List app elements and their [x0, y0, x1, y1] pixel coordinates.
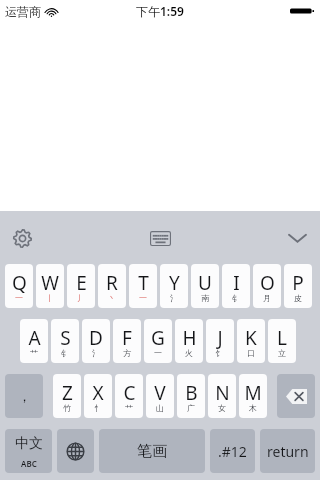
- staticText: S: [60, 325, 71, 351]
- staticText: 钅: [61, 348, 69, 358]
- staticText: 一: [154, 348, 162, 358]
- staticText: 下午1:59: [136, 3, 184, 19]
- staticText: U: [198, 270, 212, 296]
- staticText: 口: [247, 348, 255, 358]
- button[interactable]: Backspace: [277, 374, 315, 418]
- staticText: B: [185, 380, 198, 406]
- button[interactable]: G: [144, 319, 172, 363]
- staticText: F: [122, 325, 132, 351]
- staticText: R: [106, 270, 118, 296]
- staticText: M: [244, 380, 262, 406]
- staticText: 饣: [216, 348, 224, 358]
- staticText: N: [215, 380, 230, 406]
- button[interactable]: U: [191, 264, 219, 308]
- staticText: 丶: [108, 293, 116, 303]
- button[interactable]: A: [20, 319, 48, 363]
- staticText: O: [260, 270, 275, 296]
- staticText: ABC: [21, 458, 37, 469]
- staticText: Y: [169, 270, 180, 296]
- staticText: C: [123, 380, 136, 406]
- button[interactable]: M: [239, 374, 267, 418]
- button[interactable]: I: [222, 264, 250, 308]
- staticText: 艹: [125, 403, 133, 413]
- button[interactable]: W: [36, 264, 64, 308]
- button[interactable]: C: [115, 374, 143, 418]
- staticText: K: [245, 325, 257, 351]
- staticText: Q: [12, 270, 27, 296]
- staticText: L: [277, 325, 287, 351]
- staticText: A: [28, 325, 41, 351]
- staticText: G: [151, 325, 165, 351]
- staticText: Z: [62, 380, 73, 406]
- staticText: 氵: [170, 293, 178, 303]
- staticText: 一: [15, 293, 23, 303]
- button[interactable]: T: [129, 264, 157, 308]
- staticText: E: [76, 270, 87, 296]
- button[interactable]: Switch keyboard: [57, 429, 94, 473]
- button[interactable]: 笔画: [99, 429, 205, 473]
- button[interactable]: K: [237, 319, 265, 363]
- staticText: 丿: [77, 293, 85, 303]
- staticText: 艹: [30, 348, 38, 358]
- staticText: 忄: [94, 403, 102, 413]
- staticText: 皮: [294, 293, 302, 303]
- staticText: H: [182, 325, 197, 351]
- staticText: 运营商: [5, 4, 41, 19]
- staticText: 笔画: [137, 442, 167, 461]
- button[interactable]: X: [84, 374, 112, 418]
- button[interactable]: 中文: [5, 429, 52, 473]
- staticText: 一: [139, 293, 147, 303]
- staticText: 木: [249, 403, 257, 413]
- staticText: X: [92, 380, 104, 406]
- button[interactable]: Q: [5, 264, 33, 308]
- button[interactable]: ，: [5, 374, 43, 418]
- staticText: I: [233, 270, 240, 296]
- button[interactable]: B: [177, 374, 205, 418]
- staticText: 氵: [92, 348, 100, 358]
- button[interactable]: E: [67, 264, 95, 308]
- button[interactable]: V: [146, 374, 174, 418]
- staticText: 月: [263, 293, 271, 303]
- button[interactable]: D: [82, 319, 110, 363]
- staticText: ，: [18, 388, 31, 404]
- staticText: 山: [156, 403, 164, 413]
- staticText: 南: [201, 293, 209, 303]
- button[interactable]: J: [206, 319, 234, 363]
- staticText: 方: [123, 348, 131, 358]
- button[interactable]: S: [51, 319, 79, 363]
- staticText: .#12: [218, 442, 247, 461]
- staticText: W: [41, 270, 59, 296]
- button[interactable]: .#12: [210, 429, 255, 473]
- button[interactable]: R: [98, 264, 126, 308]
- button[interactable]: O: [253, 264, 281, 308]
- button[interactable]: return: [260, 429, 315, 473]
- staticText: P: [292, 270, 304, 296]
- staticText: D: [89, 325, 103, 351]
- staticText: J: [217, 325, 223, 351]
- staticText: 广: [187, 403, 195, 413]
- button[interactable]: L: [268, 319, 296, 363]
- staticText: 立: [278, 348, 286, 358]
- staticText: 竹: [63, 403, 71, 413]
- staticText: T: [138, 270, 149, 296]
- button[interactable]: Y: [160, 264, 188, 308]
- staticText: 中文: [15, 435, 43, 453]
- staticText: V: [154, 380, 166, 406]
- button[interactable]: N: [208, 374, 236, 418]
- button[interactable]: H: [175, 319, 203, 363]
- staticText: 女: [218, 403, 226, 413]
- staticText: 丨: [46, 293, 54, 303]
- button[interactable]: P: [284, 264, 312, 308]
- staticText: return: [267, 442, 309, 461]
- staticText: 钅: [232, 293, 240, 303]
- button[interactable]: Settings: [6, 222, 38, 254]
- button[interactable]: Keyboard layout: [143, 224, 177, 252]
- button[interactable]: F: [113, 319, 141, 363]
- button[interactable]: Hide keyboard: [282, 223, 312, 253]
- staticText: 火: [185, 348, 193, 358]
- button[interactable]: Z: [53, 374, 81, 418]
